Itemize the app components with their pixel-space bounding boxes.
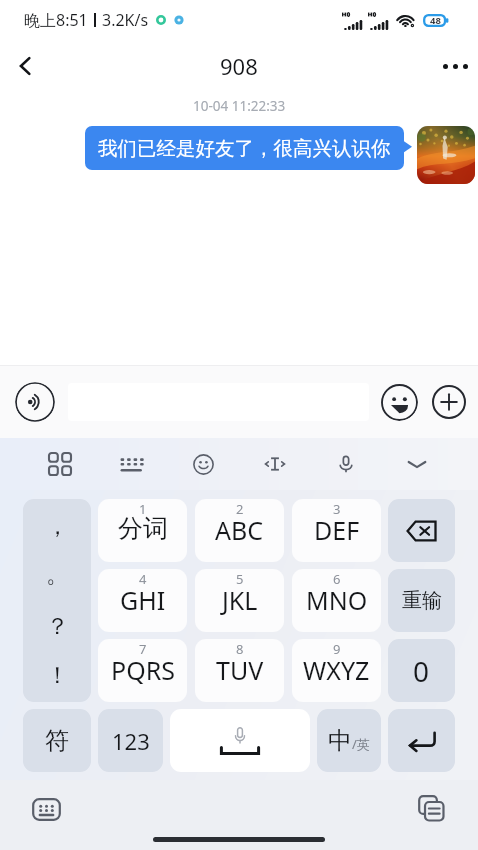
staticText: 重输	[402, 588, 442, 613]
button[interactable]: 7	[98, 639, 187, 702]
staticText: 。	[46, 560, 69, 589]
staticText: 48	[430, 14, 441, 27]
button[interactable]: 4	[98, 569, 187, 632]
button[interactable]: 2	[195, 499, 284, 562]
staticText: WXYZ	[303, 653, 370, 687]
staticText: 我们已经是好友了，很高兴认识你	[98, 136, 391, 161]
staticText: DEF	[314, 513, 360, 547]
button[interactable]: Enter	[388, 709, 455, 772]
staticText: TUV	[216, 653, 264, 687]
button[interactable]: More options	[432, 40, 478, 92]
staticText: 10-04 11:22:33	[193, 97, 286, 115]
staticText: 3	[333, 500, 341, 518]
staticText: ？	[46, 612, 69, 641]
button[interactable]: Punctuation	[23, 499, 91, 702]
staticText: 分词	[118, 513, 168, 544]
staticText: 5	[236, 570, 244, 588]
button[interactable]: 我们已经是好友了，很高兴认识你	[85, 126, 404, 170]
staticText: ，	[46, 512, 69, 541]
staticText: 9	[333, 640, 341, 658]
staticText: ！	[46, 661, 69, 690]
staticText: 1	[139, 500, 147, 518]
button[interactable]: Clipboard	[415, 792, 447, 824]
staticText: MNO	[306, 583, 368, 617]
button[interactable]: 符	[23, 709, 91, 772]
button[interactable]: 中	[317, 709, 381, 772]
staticText: GHI	[120, 583, 166, 617]
staticText: 8	[236, 640, 244, 658]
button[interactable]: 6	[292, 569, 381, 632]
button[interactable]: Switch keyboard	[30, 793, 62, 825]
button[interactable]: 1	[98, 499, 187, 562]
staticText: 中	[328, 726, 352, 756]
button[interactable]: cursor	[239, 438, 310, 490]
button[interactable]: Emoji	[380, 383, 418, 421]
staticText: 晚上8:51	[24, 9, 88, 31]
button[interactable]: Space	[170, 709, 310, 772]
staticText: /英	[352, 735, 370, 753]
button[interactable]: Back	[0, 40, 50, 92]
button[interactable]: 3	[292, 499, 381, 562]
button[interactable]: Voice input	[15, 382, 55, 422]
button[interactable]: 123	[98, 709, 163, 772]
staticText: JKL	[222, 583, 258, 617]
button[interactable]: 8	[195, 639, 284, 702]
button[interactable]: 0	[388, 639, 455, 702]
staticText: 123	[112, 726, 150, 756]
staticText: 0	[413, 652, 430, 690]
staticText: 7	[139, 640, 147, 658]
button[interactable]: 9	[292, 639, 381, 702]
button[interactable]: keyboard	[96, 438, 168, 490]
button[interactable]: Contact avatar	[417, 126, 475, 184]
staticText: 4	[139, 570, 147, 588]
button[interactable]: emoji	[168, 438, 239, 490]
button[interactable]: down	[381, 438, 452, 490]
staticText: 3.2K/s	[102, 9, 149, 31]
button[interactable]: 重输	[388, 569, 455, 632]
button[interactable]: Delete	[388, 499, 455, 562]
staticText: PQRS	[111, 653, 175, 687]
other: Delete	[406, 520, 438, 542]
staticText: 908	[220, 51, 258, 81]
staticText: 符	[45, 726, 69, 756]
staticText: 2	[236, 500, 244, 518]
button[interactable]: 5	[195, 569, 284, 632]
staticText: ABC	[215, 513, 264, 547]
staticText: 6	[333, 570, 341, 588]
button[interactable]: mic	[310, 438, 381, 490]
button[interactable]: Add attachment	[430, 383, 468, 421]
button[interactable]: grid	[24, 438, 96, 490]
other: Enter	[408, 730, 436, 752]
